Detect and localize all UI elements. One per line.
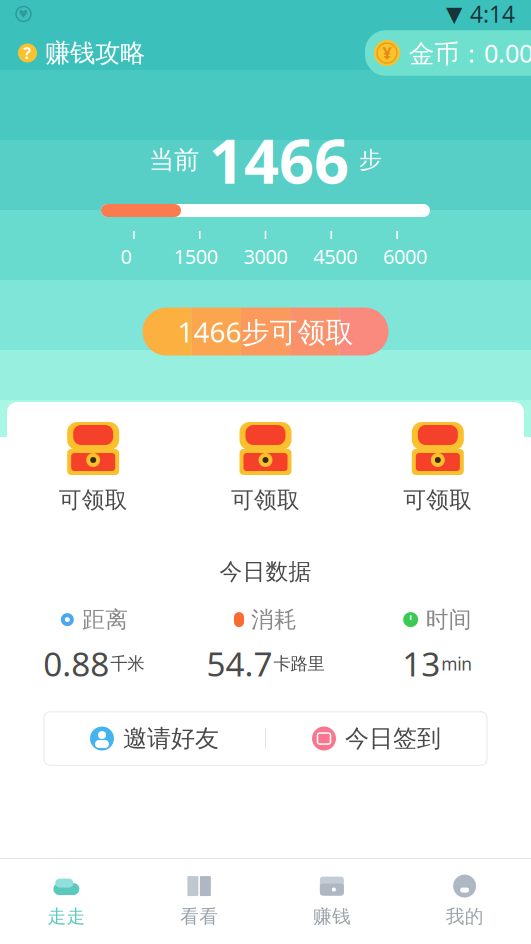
staticText: 我的	[446, 905, 484, 928]
staticText: 6000	[383, 243, 427, 270]
staticText: 邀请好友	[123, 724, 219, 753]
staticText: ▼	[446, 2, 462, 26]
staticText: 1466	[209, 119, 349, 201]
staticText: 54.7	[206, 641, 272, 686]
staticText: 今日数据	[219, 558, 311, 586]
staticText: 看看	[180, 905, 218, 928]
staticText: 时间	[426, 606, 472, 633]
staticText: 可领取	[403, 486, 472, 514]
staticText: 4500	[313, 243, 357, 270]
button[interactable]: 邀请好友	[44, 712, 265, 765]
staticText: 4:14	[470, 0, 515, 29]
staticText: 走走	[47, 905, 85, 928]
staticText: 3000	[243, 243, 287, 270]
staticText: 消耗	[251, 606, 297, 633]
staticText: 今日签到	[345, 724, 441, 753]
staticText: ?	[23, 42, 31, 64]
button[interactable]: 走走	[0, 867, 133, 934]
button[interactable]: 可领取	[179, 418, 352, 518]
button[interactable]: 1466步可领取	[142, 308, 388, 356]
staticText: 距离	[82, 606, 128, 633]
button[interactable]: 看看	[133, 867, 266, 934]
staticText: 1500	[174, 243, 218, 270]
staticText: min	[441, 652, 472, 675]
button[interactable]: 今日签到	[266, 712, 487, 765]
button[interactable]: 可领取	[352, 418, 524, 518]
staticText: ♥	[18, 8, 28, 20]
staticText: 0.88	[43, 641, 109, 686]
staticText: 当前	[149, 144, 199, 175]
staticText: 可领取	[231, 486, 300, 514]
staticText: 0	[120, 243, 131, 270]
staticText: 金币：0.00	[409, 36, 531, 70]
button[interactable]: 赚钱	[265, 867, 398, 934]
staticText: 13	[402, 641, 440, 686]
staticText: 赚钱攻略	[45, 37, 145, 68]
staticText: 赚钱	[313, 905, 351, 928]
staticText: ¥	[382, 42, 391, 64]
button[interactable]: 我的	[398, 867, 531, 934]
staticText: 可领取	[59, 486, 128, 514]
button[interactable]: ¥	[365, 30, 531, 76]
button[interactable]: ?	[18, 31, 145, 74]
staticText: 千米	[110, 653, 144, 674]
button[interactable]: 可领取	[7, 418, 179, 518]
staticText: 卡路里	[273, 653, 324, 674]
staticText: 步	[359, 146, 382, 174]
staticText: 1466步可领取	[177, 313, 353, 350]
